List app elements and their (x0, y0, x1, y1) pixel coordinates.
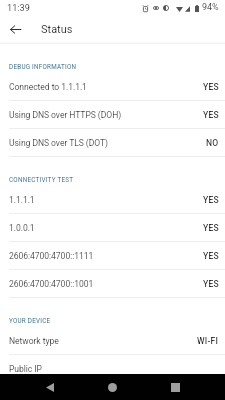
staticText: 2606:4700:4700::1111 (9, 251, 203, 261)
button[interactable]: Recent apps (163, 375, 187, 399)
staticText: CONNECTIVITY TEST (9, 176, 74, 183)
button[interactable]: Back (0, 15, 30, 43)
staticText: 94% (202, 2, 219, 13)
button[interactable]: Using DNS over TLS (DOT) (0, 129, 225, 157)
staticText: YES (203, 195, 219, 205)
button[interactable]: Using DNS over HTTPS (DOH) (0, 101, 225, 129)
button[interactable]: Back (38, 375, 62, 399)
staticText: Status (41, 23, 73, 36)
button[interactable]: 1.1.1.1 (0, 186, 225, 214)
staticText: 2606:4700:4700::1001 (9, 279, 203, 289)
button[interactable]: Network type (0, 327, 225, 355)
button[interactable]: Home (100, 375, 124, 399)
staticText: NO (206, 138, 219, 148)
staticText: YES (203, 110, 219, 120)
staticText: Public IP (9, 364, 219, 374)
staticText: 1.1.1.1 (9, 195, 203, 205)
staticText: Network type (9, 336, 197, 346)
staticText: YES (203, 251, 219, 261)
staticText: YES (203, 82, 219, 92)
staticText: YES (203, 279, 219, 289)
staticText: Using DNS over TLS (DOT) (9, 138, 206, 148)
staticText: YOUR DEVICE (9, 317, 51, 324)
button[interactable]: 2606:4700:4700::1111 (0, 242, 225, 270)
staticText: Connected to 1.1.1.1 (9, 82, 203, 92)
button[interactable]: 1.0.0.1 (0, 214, 225, 242)
staticText: WI-FI (197, 336, 219, 346)
staticText: 11:39 (7, 2, 30, 13)
button[interactable]: Connected to 1.1.1.1 (0, 73, 225, 101)
button[interactable]: 2606:4700:4700::1001 (0, 270, 225, 298)
staticText: Using DNS over HTTPS (DOH) (9, 110, 203, 120)
staticText: DEBUG INFORMATION (9, 63, 77, 70)
staticText: YES (203, 223, 219, 233)
button[interactable]: Public IP (0, 355, 225, 383)
staticText: 1.0.0.1 (9, 223, 203, 233)
